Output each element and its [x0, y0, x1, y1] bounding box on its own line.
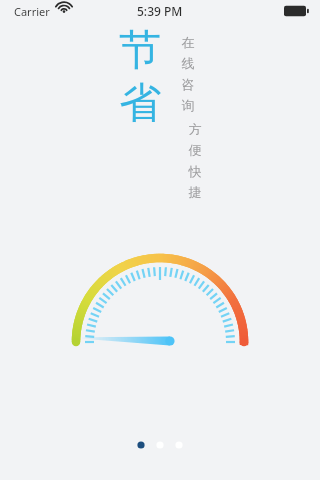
button[interactable]: Page 3	[170, 437, 188, 453]
button[interactable]: Page 1	[132, 437, 150, 453]
button[interactable]: Page 2	[151, 437, 169, 453]
